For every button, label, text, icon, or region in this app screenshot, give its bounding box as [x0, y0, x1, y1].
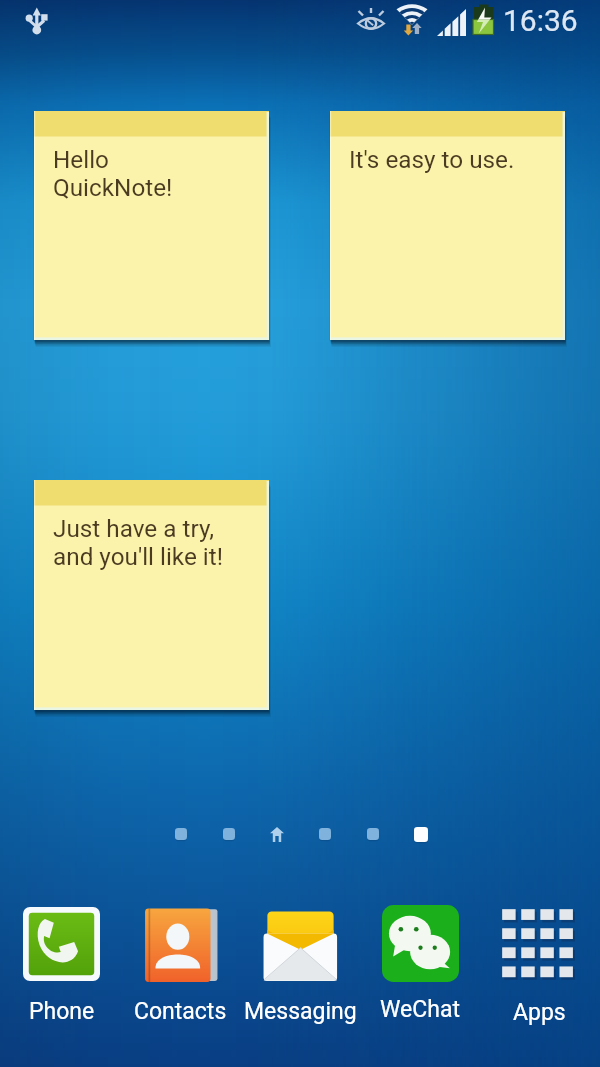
staticText: Messaging [244, 998, 357, 1025]
staticText: Phone [29, 998, 95, 1025]
button[interactable]: Page [174, 826, 188, 842]
staticText: 16:36 [503, 3, 578, 38]
button[interactable]: Current page [414, 826, 428, 842]
button[interactable]: WeChat [360, 905, 480, 1023]
button[interactable]: Apps [479, 908, 599, 1026]
staticText: QuickNote! [53, 173, 173, 201]
button[interactable]: Page [366, 826, 380, 842]
staticText: Contacts [134, 998, 227, 1025]
button[interactable]: Home screen [270, 826, 284, 842]
staticText: Just have a try, [53, 514, 214, 542]
button[interactable]: Messaging [240, 907, 360, 1025]
staticText: Hello [53, 145, 109, 173]
button[interactable]: Just have a try, [34, 480, 269, 710]
button[interactable]: Contacts [120, 907, 240, 1025]
button[interactable]: Page [222, 826, 236, 842]
button[interactable]: Hello [34, 111, 269, 340]
staticText: and you'll like it! [53, 542, 223, 570]
staticText: Apps [513, 999, 566, 1026]
staticText: WeChat [380, 996, 460, 1023]
button[interactable]: Page [318, 826, 332, 842]
button[interactable]: Phone [1, 907, 121, 1025]
button[interactable]: It's easy to use. [330, 111, 565, 340]
staticText: It's easy to use. [349, 145, 515, 173]
